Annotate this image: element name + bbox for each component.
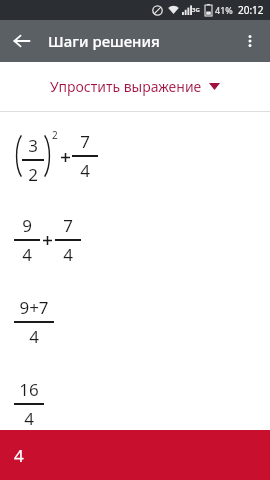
button[interactable]: Back (5, 24, 39, 58)
staticText: 3 (28, 134, 38, 157)
staticText: 4 (80, 159, 90, 182)
staticText: 4 (24, 407, 34, 430)
button[interactable]: 4 (0, 430, 270, 480)
staticText: 41% (215, 4, 233, 16)
staticText: 4 (29, 325, 39, 348)
button[interactable]: Упростить выражение (0, 62, 270, 111)
button[interactable]: More options (233, 24, 267, 58)
staticText: 9+7 (19, 296, 49, 319)
staticText: 9 (22, 214, 32, 237)
staticText: 4 (14, 444, 24, 467)
button[interactable]: 16 (0, 378, 270, 430)
button[interactable]: 9 (0, 214, 270, 266)
staticText: 7 (63, 214, 73, 237)
staticText: 3G (192, 6, 200, 14)
staticText: 4 (22, 243, 32, 266)
staticText: 4 (63, 243, 73, 266)
staticText: 7 (80, 130, 90, 153)
staticText: Упростить выражение (50, 77, 202, 96)
staticText: 16 (19, 378, 39, 401)
button[interactable]: 9+7 (0, 296, 270, 348)
staticText: Шаги решения (48, 31, 160, 51)
staticText: 20:12 (238, 3, 264, 17)
button[interactable]: 3 (0, 126, 270, 186)
staticText: 2 (52, 128, 58, 142)
staticText: 2 (28, 163, 38, 186)
